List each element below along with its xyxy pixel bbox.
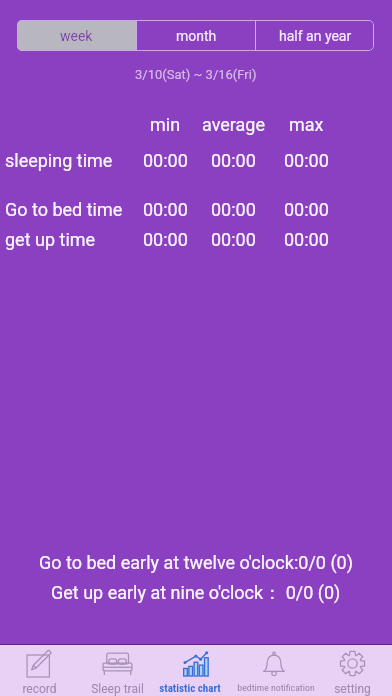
staticText: record bbox=[22, 682, 57, 696]
staticText: week bbox=[60, 28, 93, 44]
button[interactable]: statistic chart bbox=[157, 645, 233, 696]
staticText: Go to bed time bbox=[5, 199, 123, 220]
button[interactable]: week bbox=[17, 20, 136, 51]
staticText: 00:00 bbox=[284, 229, 329, 250]
staticText: half an year bbox=[279, 28, 352, 44]
staticText: 00:00 bbox=[211, 229, 256, 250]
staticText: 00:00 bbox=[143, 150, 188, 171]
button[interactable]: record bbox=[0, 645, 78, 696]
button[interactable]: bedtime notification bbox=[225, 645, 327, 696]
other: bedtime notification bbox=[261, 651, 287, 677]
button[interactable]: month bbox=[137, 20, 255, 51]
button[interactable]: half an year bbox=[256, 20, 374, 51]
staticText: Get up early at nine o'clock： 0/0 (0) bbox=[51, 582, 341, 604]
other: record bbox=[26, 651, 52, 677]
staticText: 00:00 bbox=[211, 150, 256, 171]
staticText: get up time bbox=[5, 229, 96, 250]
button[interactable]: Sleep trail bbox=[78, 645, 157, 696]
staticText: max bbox=[289, 114, 324, 135]
staticText: bedtime notification bbox=[237, 682, 315, 693]
other: Sleep trail bbox=[102, 652, 133, 675]
staticText: min bbox=[150, 114, 181, 135]
button[interactable]: setting bbox=[319, 645, 392, 696]
staticText: month bbox=[176, 28, 217, 44]
staticText: 00:00 bbox=[284, 150, 329, 171]
staticText: setting bbox=[334, 682, 371, 696]
staticText: 00:00 bbox=[143, 229, 188, 250]
other: statistic chart bbox=[183, 651, 208, 676]
staticText: Sleep trail bbox=[91, 682, 144, 696]
staticText: 00:00 bbox=[284, 199, 329, 220]
staticText: Go to bed early at twelve o'clock:0/0 (0… bbox=[39, 552, 353, 573]
staticText: statistic chart bbox=[159, 682, 221, 695]
other: setting bbox=[339, 650, 366, 677]
staticText: 00:00 bbox=[143, 199, 188, 220]
staticText: sleeping time bbox=[5, 150, 113, 171]
staticText: 3/10(Sat) ~ 3/16(Fri) bbox=[135, 67, 257, 82]
staticText: 00:00 bbox=[211, 199, 256, 220]
staticText: average bbox=[202, 114, 265, 135]
